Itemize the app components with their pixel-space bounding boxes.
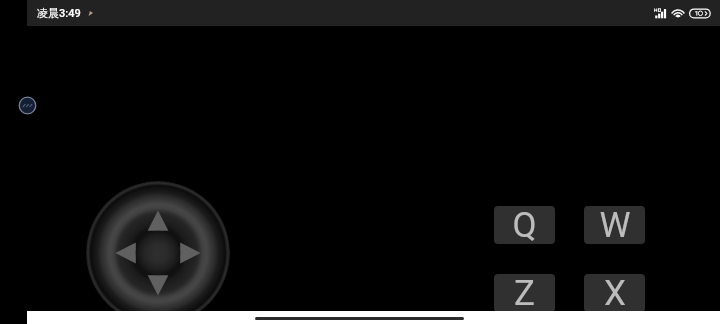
staticText: W [599,206,631,243]
staticText: Z [514,274,535,311]
button[interactable]: Z [494,274,555,312]
button[interactable]: W [584,206,645,244]
button[interactable]: X [584,274,645,312]
button[interactable]: Game assistant [18,96,37,115]
button[interactable]: Home gesture bar [255,317,464,320]
staticText: Q [512,206,537,243]
staticText: 凌晨3:49 [37,6,81,20]
staticText: X [604,274,626,311]
button[interactable]: Direction pad [86,181,230,324]
button[interactable]: Q [494,206,555,244]
